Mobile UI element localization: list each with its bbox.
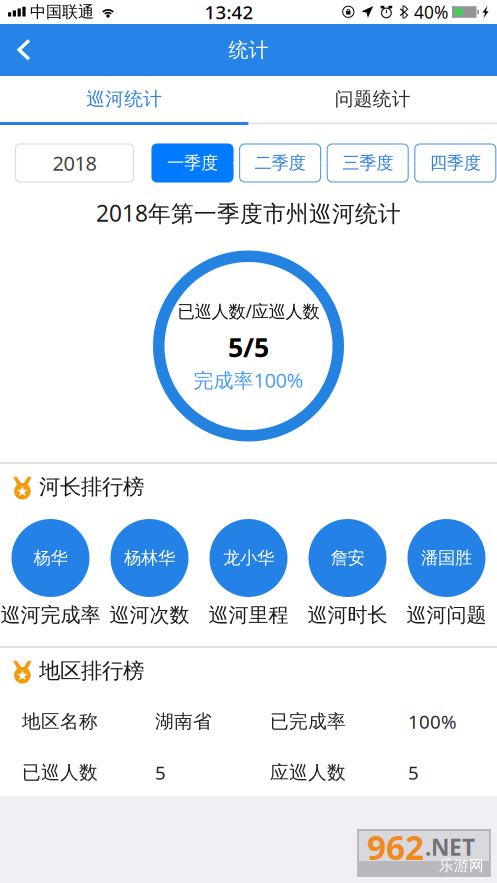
staticText: 已巡人数/应巡人数 (177, 299, 319, 322)
staticText: 13:42 (204, 0, 253, 24)
staticText: 杨林华 (124, 547, 175, 569)
button[interactable]: 一季度 (152, 144, 233, 182)
staticText: 2018 (52, 150, 96, 176)
staticText: 5 (155, 760, 166, 785)
button[interactable]: 三季度 (327, 144, 408, 182)
staticText: 地区排行榜 (39, 658, 144, 684)
staticText: 地区名称 (22, 710, 98, 733)
staticText: 5 (408, 760, 419, 785)
staticText: 巡河时长 (307, 603, 387, 627)
staticText: 巡河完成率 (0, 603, 100, 627)
staticText: 詹安 (330, 547, 364, 569)
button[interactable]: 二季度 (240, 144, 321, 182)
button[interactable]: Back (0, 24, 46, 76)
staticText: 巡河统计 (86, 87, 162, 110)
button[interactable]: 四季度 (415, 144, 496, 182)
button[interactable]: 潘国胜 (397, 510, 496, 626)
staticText: 巡河次数 (109, 603, 189, 627)
staticText: 巡河里程 (208, 603, 288, 627)
button[interactable]: 2018 (15, 144, 133, 182)
staticText: 杨华 (33, 547, 67, 569)
staticText: 一季度 (167, 152, 218, 174)
staticText: 962 (367, 825, 424, 869)
staticText: 2018年第一季度市州巡河统计 (96, 198, 401, 228)
staticText: 问题统计 (335, 87, 411, 110)
staticText: 四季度 (430, 152, 481, 174)
button[interactable]: 詹安 (298, 510, 397, 626)
button[interactable]: 问题统计 (248, 76, 497, 122)
staticText: 龙小华 (223, 547, 274, 569)
button[interactable]: 龙小华 (199, 510, 298, 626)
button[interactable]: 杨林华 (100, 510, 199, 626)
staticText: 潘国胜 (421, 547, 472, 569)
staticText: 40% (414, 0, 448, 23)
staticText: 三季度 (342, 152, 393, 174)
staticText: 中国联通 (30, 2, 94, 22)
button[interactable]: 巡河统计 (0, 76, 248, 122)
staticText: 乐游网 (439, 856, 484, 874)
staticText: 河长排行榜 (39, 474, 144, 500)
button[interactable]: 杨华 (1, 510, 100, 626)
staticText: 100% (408, 709, 457, 734)
staticText: 应巡人数 (270, 761, 346, 784)
staticText: 5/5 (228, 329, 269, 365)
staticText: 湖南省 (155, 710, 212, 733)
staticText: .NET (425, 832, 475, 862)
staticText: 巡河问题 (406, 603, 486, 627)
staticText: 已巡人数 (22, 761, 98, 784)
staticText: 已完成率 (270, 710, 346, 733)
staticText: 完成率100% (193, 367, 303, 393)
staticText: 二季度 (255, 152, 306, 174)
staticText: 统计 (228, 38, 268, 62)
